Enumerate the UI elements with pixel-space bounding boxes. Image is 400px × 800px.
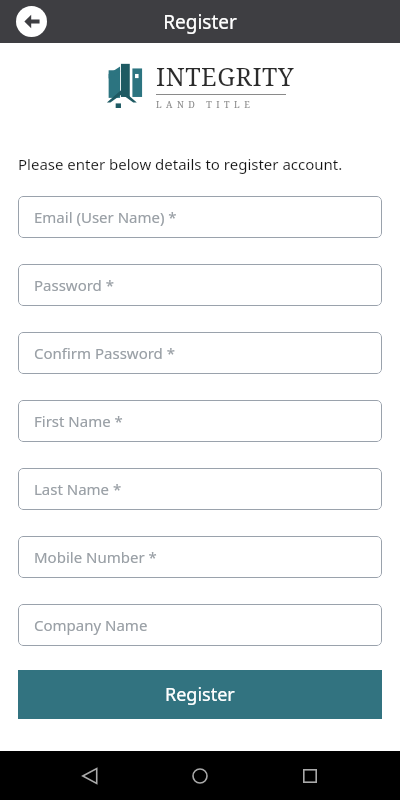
staticText: Email (User Name) * <box>34 207 177 227</box>
button[interactable]: Mobile Number * <box>18 536 382 578</box>
button[interactable]: Back <box>70 756 110 796</box>
staticText: LAND TITLE <box>156 98 255 110</box>
staticText: Register <box>165 682 235 707</box>
button[interactable]: Home <box>180 756 220 796</box>
staticText: Mobile Number * <box>34 547 157 567</box>
button[interactable]: Recent apps <box>290 756 330 796</box>
button[interactable]: Confirm Password * <box>18 332 382 374</box>
staticText: First Name * <box>34 411 123 431</box>
staticText: Last Name * <box>34 479 122 499</box>
staticText: Confirm Password * <box>34 343 175 363</box>
button[interactable]: First Name * <box>18 400 382 442</box>
staticText: Password * <box>34 275 115 295</box>
button[interactable]: Company Name <box>18 604 382 646</box>
button[interactable]: Register <box>18 670 382 719</box>
staticText: Company Name <box>34 615 148 635</box>
staticText: Register <box>163 9 237 35</box>
button[interactable]: Last Name * <box>18 468 382 510</box>
button[interactable]: Email (User Name) * <box>18 196 382 238</box>
button[interactable]: Password * <box>18 264 382 306</box>
button[interactable]: Back <box>9 0 53 43</box>
staticText: Please enter below details to register a… <box>18 154 343 174</box>
staticText: INTEGRITY <box>156 59 295 93</box>
